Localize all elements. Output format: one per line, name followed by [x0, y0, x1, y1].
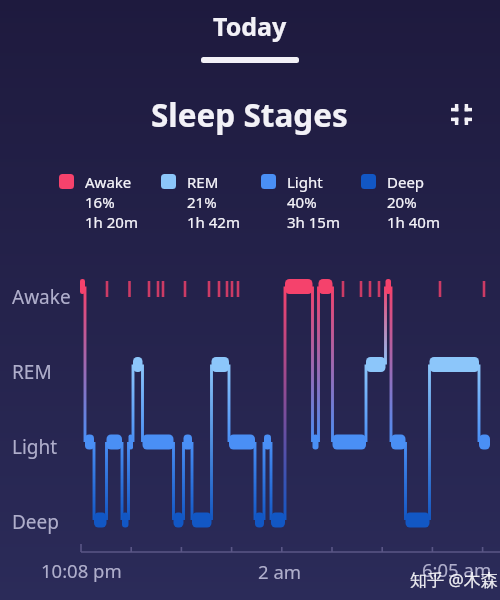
staticText: 16% [85, 192, 115, 212]
staticText: Awake [12, 284, 71, 310]
button[interactable]: Deep [361, 172, 461, 232]
staticText: 10:08 pm [41, 558, 122, 583]
staticText: 20% [387, 192, 417, 212]
staticText: 3h 15m [287, 212, 340, 232]
staticText: 知乎 @木森 [410, 568, 498, 591]
staticText: Today [213, 9, 287, 43]
staticText: 40% [287, 192, 317, 212]
staticText: REM [187, 172, 219, 192]
button[interactable]: Light [261, 172, 361, 232]
staticText: 1h 20m [85, 212, 138, 232]
staticText: 21% [187, 192, 217, 212]
staticText: Light [12, 434, 58, 460]
staticText: 1h 42m [187, 212, 240, 232]
button[interactable]: Today [187, 7, 313, 65]
staticText: Deep [387, 172, 425, 192]
staticText: Sleep Stages [151, 93, 348, 136]
staticText: 1h 40m [387, 212, 440, 232]
button[interactable]: Collapse chart [441, 94, 482, 135]
staticText: Light [287, 172, 323, 192]
staticText: REM [12, 359, 52, 385]
staticText: Deep [12, 509, 59, 535]
button[interactable]: REM [161, 172, 261, 232]
staticText: 2 am [258, 559, 302, 584]
staticText: 6:05 am [422, 557, 492, 582]
button[interactable]: Awake [59, 172, 161, 232]
staticText: Awake [85, 172, 132, 192]
